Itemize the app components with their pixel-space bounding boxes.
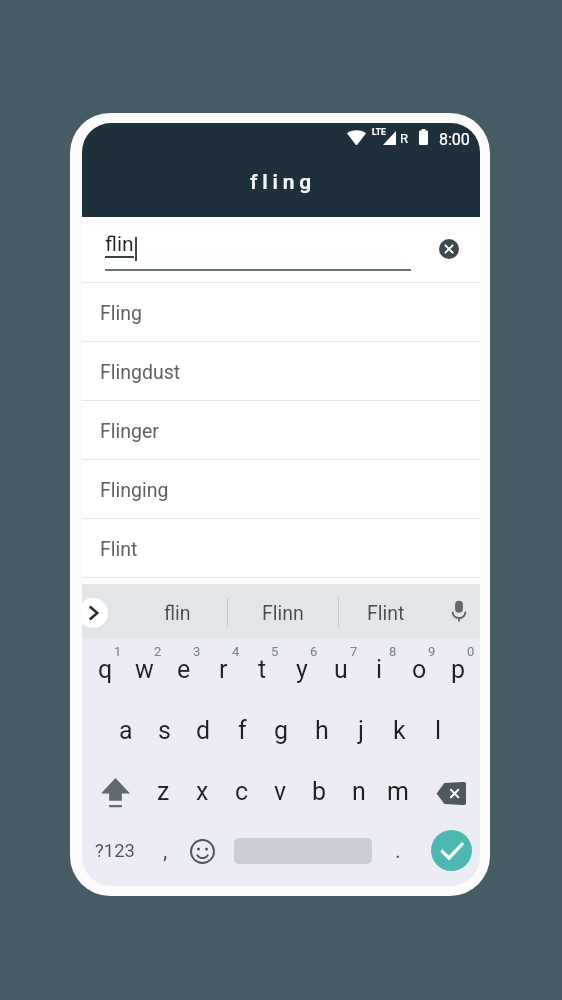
button[interactable]: Emoji — [182, 831, 222, 871]
button[interactable]: , — [145, 823, 185, 879]
button[interactable]: k — [380, 700, 419, 761]
staticText: g — [274, 716, 289, 745]
staticText: R — [400, 131, 409, 146]
button[interactable]: x — [183, 761, 222, 822]
staticText: w — [135, 655, 154, 684]
staticText: flin — [164, 602, 191, 625]
button[interactable]: j — [341, 700, 380, 761]
button[interactable]: Enter — [428, 827, 474, 873]
staticText: i — [376, 655, 383, 684]
staticText: n — [352, 777, 366, 806]
button[interactable]: a — [106, 700, 145, 761]
button[interactable]: Flinger — [82, 401, 480, 459]
button[interactable]: d — [184, 700, 223, 761]
staticText: 0 — [467, 644, 475, 659]
staticText: Fling — [100, 302, 142, 325]
button[interactable]: h — [302, 700, 341, 761]
staticText: f — [238, 716, 247, 745]
staticText: 5 — [271, 644, 279, 659]
button[interactable]: z — [144, 761, 183, 822]
staticText: 8 — [389, 644, 397, 659]
button[interactable]: u — [321, 639, 360, 700]
staticText: fling — [84, 170, 480, 195]
button[interactable]: m — [378, 761, 417, 822]
button[interactable]: c — [222, 761, 261, 822]
button[interactable]: Fling — [82, 283, 480, 341]
staticText: b — [312, 777, 327, 806]
button[interactable]: Flinn — [238, 586, 328, 641]
staticText: d — [196, 716, 211, 745]
button[interactable]: flin — [132, 586, 222, 641]
staticText: k — [393, 716, 406, 745]
button[interactable]: Backspace — [424, 766, 478, 820]
button[interactable]: w — [125, 639, 164, 700]
button[interactable]: Flingdust — [82, 342, 480, 400]
staticText: h — [315, 716, 329, 745]
staticText: u — [334, 655, 348, 684]
staticText: 1 — [114, 644, 122, 659]
staticText: 8:00 — [439, 130, 470, 149]
staticText: . — [395, 838, 401, 864]
staticText: 9 — [428, 644, 436, 659]
staticText: Flint — [367, 602, 405, 625]
staticText: c — [235, 777, 249, 806]
staticText: z — [157, 777, 170, 806]
staticText: e — [177, 655, 191, 684]
button[interactable]: o — [400, 639, 439, 700]
button[interactable]: r — [204, 639, 243, 700]
button[interactable]: y — [282, 639, 321, 700]
button[interactable]: b — [300, 761, 339, 822]
staticText: Flingdust — [100, 361, 181, 384]
button[interactable]: l — [419, 700, 458, 761]
staticText: Flint — [100, 538, 138, 561]
button[interactable]: e — [164, 639, 203, 700]
staticText: q — [98, 655, 113, 684]
staticText: r — [219, 655, 228, 684]
button[interactable]: Flint — [82, 519, 480, 577]
staticText: l — [435, 716, 442, 745]
staticText: v — [274, 777, 287, 806]
button[interactable]: f — [223, 700, 262, 761]
staticText: 3 — [193, 644, 201, 659]
staticText: 6 — [310, 644, 318, 659]
button[interactable]: v — [261, 761, 300, 822]
staticText: 7 — [350, 644, 358, 659]
button[interactable]: Clear search — [431, 231, 467, 267]
button[interactable]: ?123 — [87, 823, 143, 879]
button[interactable]: n — [339, 761, 378, 822]
button[interactable]: Voice input — [443, 595, 475, 627]
button[interactable]: Space — [228, 827, 378, 875]
staticText: a — [119, 716, 133, 745]
staticText: s — [158, 716, 171, 745]
staticText: p — [451, 655, 466, 684]
button[interactable]: Shift — [88, 766, 142, 820]
staticText: j — [358, 716, 364, 745]
button[interactable]: More suggestions — [82, 598, 108, 628]
staticText: 4 — [232, 644, 240, 659]
staticText: o — [412, 655, 427, 684]
staticText: LTE — [372, 127, 386, 137]
staticText: m — [387, 777, 409, 806]
staticText: Flinger — [100, 420, 159, 443]
staticText: x — [196, 777, 209, 806]
button[interactable]: Flint — [341, 586, 431, 641]
button[interactable]: g — [262, 700, 301, 761]
button[interactable]: . — [378, 823, 418, 879]
button[interactable]: p — [439, 639, 478, 700]
button[interactable]: t — [243, 639, 282, 700]
button[interactable]: i — [360, 639, 399, 700]
button[interactable]: s — [145, 700, 184, 761]
staticText: t — [258, 655, 267, 684]
staticText: y — [296, 655, 308, 684]
button[interactable]: q — [86, 639, 125, 700]
staticText: , — [163, 838, 168, 864]
staticText: Flinn — [262, 602, 304, 625]
button[interactable]: Flinging — [82, 460, 480, 518]
staticText: 2 — [154, 644, 162, 659]
staticText: ?123 — [95, 840, 135, 862]
staticText: Flinging — [100, 479, 169, 502]
staticText: flin — [105, 232, 134, 257]
